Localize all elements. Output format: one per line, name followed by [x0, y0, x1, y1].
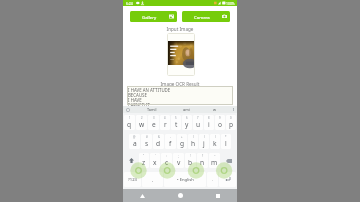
button[interactable]: 1 [124, 115, 135, 130]
staticText: 0 [230, 116, 232, 120]
staticText: l [225, 139, 227, 148]
button[interactable]: 8 [204, 115, 214, 130]
staticText: k [213, 139, 217, 148]
button[interactable]: ? [197, 153, 208, 168]
staticText: / [215, 135, 216, 139]
button[interactable]: 7 [193, 115, 203, 130]
staticText: a [133, 139, 137, 148]
button[interactable]: ) [199, 134, 209, 149]
button[interactable]: : [161, 153, 172, 168]
staticText: - [170, 135, 171, 139]
staticText: # [146, 135, 148, 139]
staticText: d [156, 139, 161, 148]
button[interactable]: 3 [148, 115, 159, 130]
staticText: ? [202, 154, 204, 158]
button[interactable]: • English [164, 172, 206, 187]
staticText: m [211, 158, 218, 167]
staticText: 5 [175, 116, 177, 120]
staticText: n [200, 158, 205, 167]
button[interactable]: @ [129, 134, 140, 149]
button[interactable]: Recent apps [199, 189, 237, 202]
button[interactable]: 9 [215, 115, 225, 130]
staticText: ' [155, 154, 156, 158]
staticText: Camera [194, 14, 210, 20]
staticText: BECAUSE [128, 92, 147, 97]
button[interactable]: ~ [209, 153, 220, 168]
staticText: z [142, 158, 146, 167]
button[interactable]: + [177, 134, 187, 149]
staticText: 4 [164, 116, 166, 120]
staticText: Input Image [123, 26, 237, 32]
button[interactable]: 0 [226, 115, 236, 130]
staticText: • English [177, 177, 194, 183]
staticText: . [212, 177, 214, 183]
staticText: Image OCR Result [123, 81, 237, 87]
staticText: r [164, 120, 167, 129]
staticText: I HAVE AN ATTITUDE [128, 87, 171, 92]
staticText: ?123 [128, 177, 138, 183]
staticText: ; [178, 154, 179, 158]
staticText: i [208, 120, 210, 129]
button[interactable]: ' [150, 153, 160, 168]
button[interactable]: ; [173, 153, 184, 168]
button[interactable]: Camera [182, 11, 230, 22]
staticText: 8 [208, 116, 210, 120]
staticText: c [165, 158, 169, 167]
staticText: y [185, 120, 189, 129]
button[interactable]: # [141, 134, 152, 149]
button[interactable]: * [221, 134, 231, 149]
button[interactable]: Shift [124, 153, 138, 168]
staticText: x [153, 158, 157, 167]
staticText: e [152, 120, 156, 129]
button[interactable]: ?123 [124, 172, 141, 187]
button[interactable]: 5 [171, 115, 181, 130]
staticText: Tamil [147, 107, 157, 112]
staticText: q [127, 120, 132, 129]
staticText: p [229, 120, 234, 129]
staticText: + [181, 135, 183, 139]
staticText: 3 [153, 116, 155, 120]
button[interactable]: 6 [182, 115, 192, 130]
staticText: EARNED IT [128, 102, 151, 106]
button[interactable]: Gallery [130, 11, 177, 22]
button[interactable]: 2 [136, 115, 147, 130]
button[interactable]: Backspace [221, 153, 236, 168]
staticText: v [177, 158, 181, 167]
staticText: g [180, 139, 185, 148]
staticText: w [139, 120, 145, 129]
button[interactable]: Back [123, 189, 161, 202]
staticText: : [166, 154, 167, 158]
staticText: 1 [129, 116, 131, 120]
button[interactable]: , [142, 172, 163, 187]
staticText: t [175, 120, 178, 129]
staticText: 9 [219, 116, 221, 120]
staticText: s [145, 139, 149, 148]
staticText: 2 [141, 116, 143, 120]
button[interactable]: 4 [160, 115, 170, 130]
staticText: j [203, 139, 205, 148]
staticText: 6 [186, 116, 188, 120]
staticText: 6:24 [126, 1, 133, 6]
button[interactable]: & [153, 134, 164, 149]
staticText: * [225, 135, 227, 139]
staticText: f [169, 139, 172, 148]
staticText: 7 [197, 116, 199, 120]
staticText: @ [133, 135, 136, 139]
button[interactable]: " [139, 153, 149, 168]
button[interactable]: . [207, 172, 218, 187]
staticText: Gallery [142, 14, 157, 20]
staticText: 100% [226, 1, 235, 6]
button[interactable]: ! [185, 153, 196, 168]
staticText: o [218, 120, 222, 129]
staticText: b [188, 158, 193, 167]
staticText: & [158, 135, 160, 139]
button[interactable] [219, 172, 236, 187]
button[interactable]: Home [161, 189, 199, 202]
button[interactable]: - [165, 134, 176, 149]
staticText: I HAVE [128, 97, 142, 102]
button[interactable]: ( [188, 134, 198, 149]
staticText: ! [190, 154, 191, 158]
button[interactable]: / [210, 134, 220, 149]
staticText: w [213, 107, 216, 112]
staticText: ami [183, 107, 190, 112]
